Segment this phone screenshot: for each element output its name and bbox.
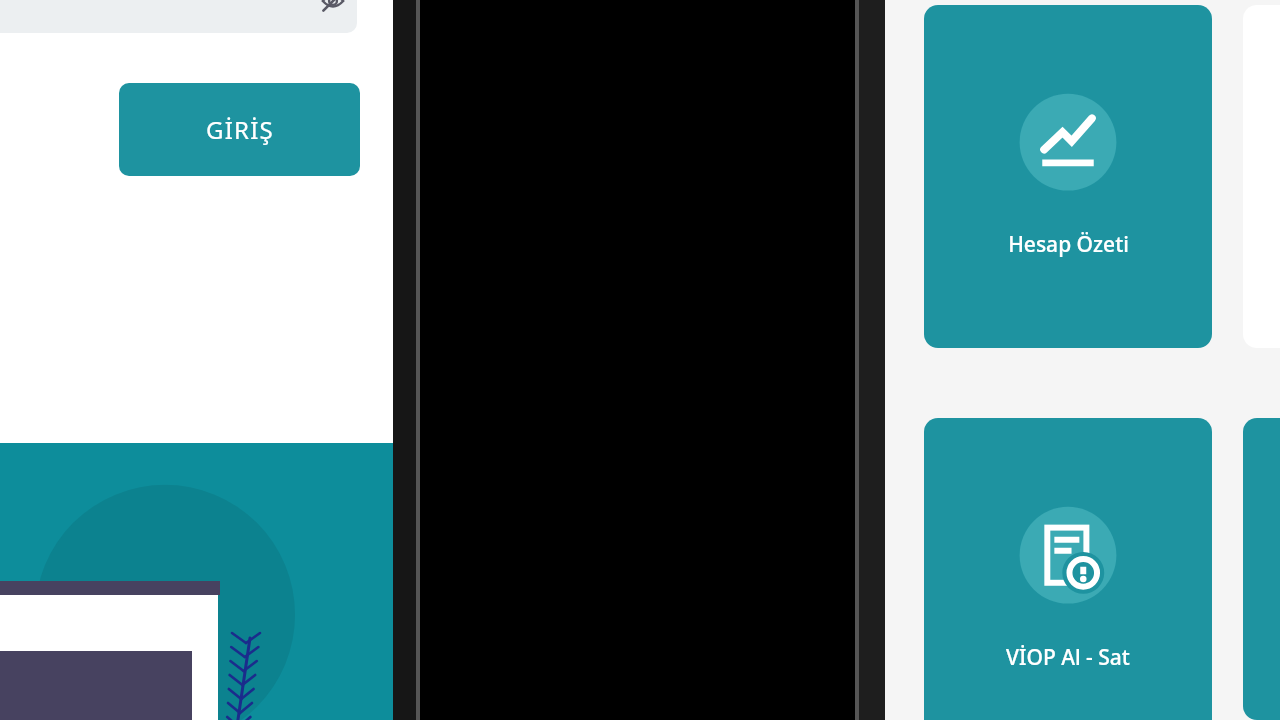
button[interactable]: VİOP Al - Sat (924, 418, 1212, 720)
staticText: GİRİŞ (206, 113, 274, 146)
button[interactable]: Hesap Özeti (924, 5, 1212, 348)
button[interactable]: GİRİŞ (119, 83, 360, 176)
button[interactable] (1243, 418, 1280, 720)
staticText: VİOP Al - Sat (1006, 643, 1130, 672)
button[interactable]: Toggle password visibility (318, 0, 348, 16)
staticText: Hesap Özeti (1008, 230, 1129, 259)
button[interactable] (0, 0, 357, 33)
